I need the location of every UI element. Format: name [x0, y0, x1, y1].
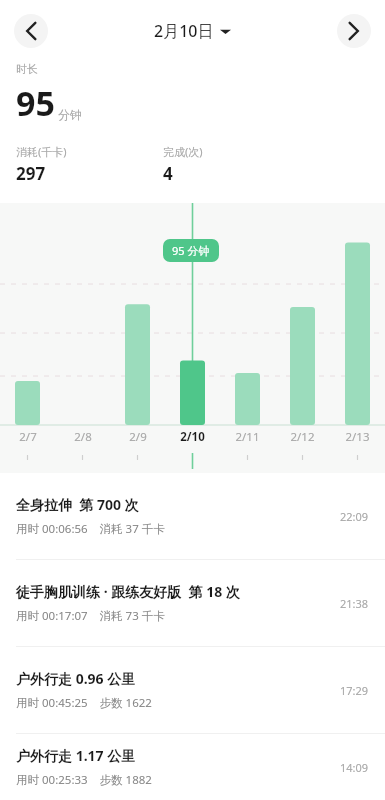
staticText: 全身拉伸 第 700 次: [16, 495, 139, 514]
staticText: 时长: [16, 62, 38, 76]
staticText: 2月10日: [154, 20, 214, 42]
staticText: 用时 00:17:07 消耗 73 千卡: [16, 608, 165, 624]
button[interactable]: 徒手胸肌训练 · 跟练友好版 第 18 次: [0, 560, 385, 647]
staticText: 22:09: [340, 509, 369, 524]
button[interactable]: 2月10日: [154, 20, 231, 42]
staticText: 分钟: [58, 107, 82, 122]
staticText: 14:09: [340, 760, 369, 775]
staticText: 21:38: [340, 596, 369, 611]
staticText: 297: [16, 162, 46, 185]
button[interactable]: 户外行走 1.17 公里: [0, 734, 385, 800]
staticText: 徒手胸肌训练 · 跟练友好版 第 18 次: [16, 582, 240, 601]
button[interactable]: 全身拉伸 第 700 次: [0, 473, 385, 560]
button[interactable]: 户外行走 0.96 公里: [0, 647, 385, 734]
staticText: 2/7: [19, 429, 37, 445]
button[interactable]: Next day: [337, 14, 371, 48]
staticText: 户外行走 0.96 公里: [16, 669, 136, 688]
staticText: 2/13: [345, 429, 370, 445]
button[interactable]: Previous day: [14, 14, 48, 48]
staticText: 2/9: [129, 429, 147, 445]
staticText: 用时 00:06:56 消耗 37 千卡: [16, 521, 165, 537]
staticText: 户外行走 1.17 公里: [16, 746, 136, 765]
staticText: 17:29: [340, 683, 369, 698]
staticText: 用时 00:45:25 步数 1622: [16, 695, 152, 711]
staticText: 4: [163, 162, 173, 185]
staticText: 2/11: [235, 429, 260, 445]
staticText: 2/8: [74, 429, 92, 445]
staticText: 2/12: [290, 429, 315, 445]
staticText: 95: [16, 80, 55, 126]
staticText: 完成(次): [163, 144, 203, 159]
staticText: 2/10: [180, 429, 205, 445]
staticText: 95 分钟: [172, 243, 210, 258]
staticText: 消耗(千卡): [16, 144, 67, 159]
staticText: 用时 00:25:33 步数 1882: [16, 772, 152, 788]
